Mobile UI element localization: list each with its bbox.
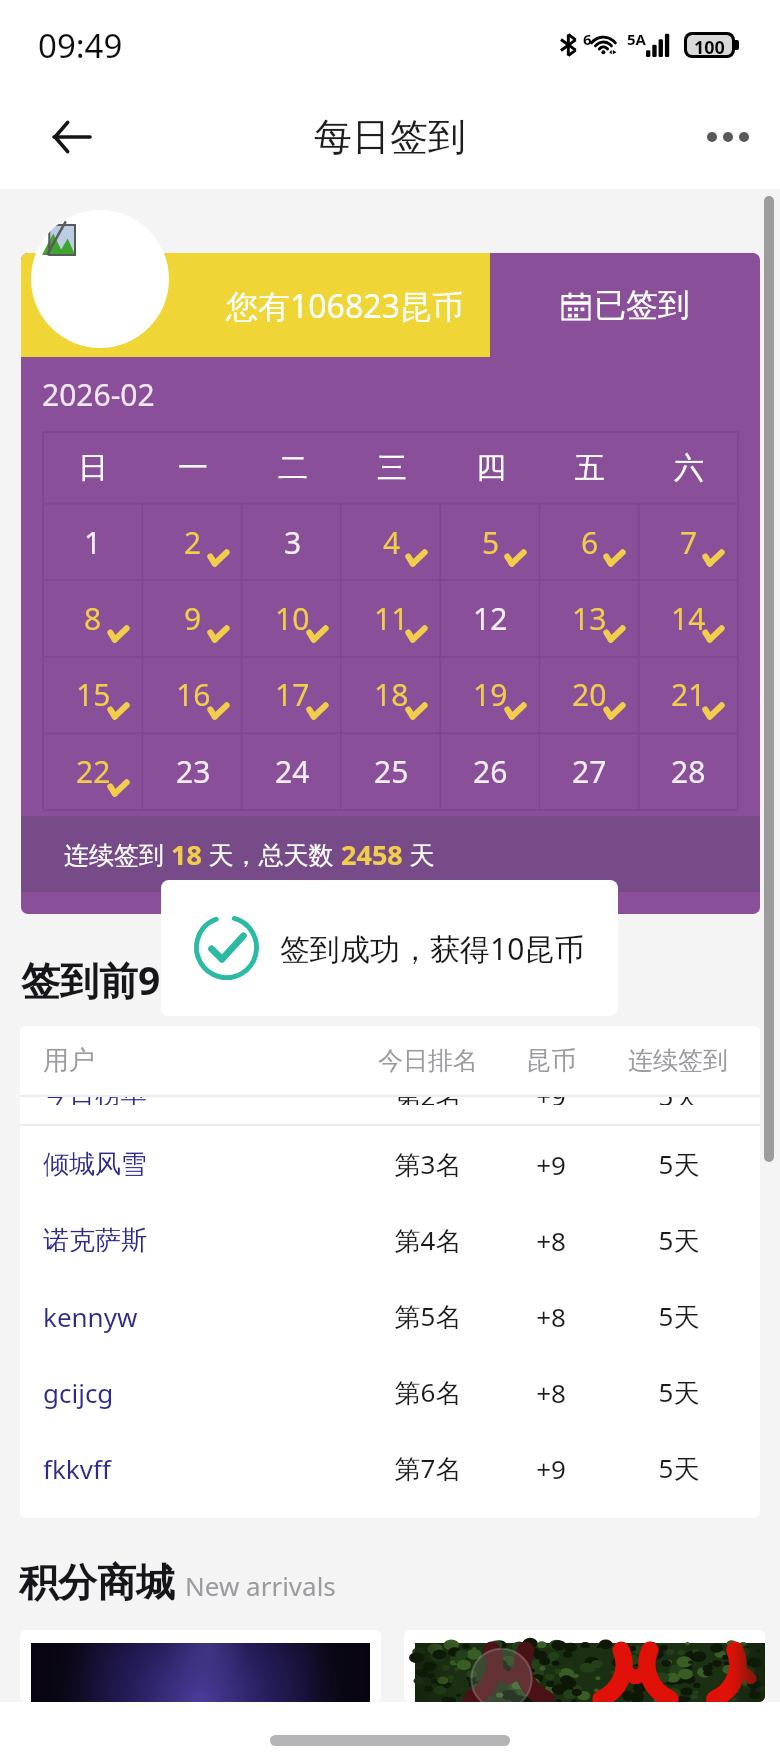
staticText: 14	[671, 598, 706, 639]
button[interactable]: kennyw	[20, 1278, 760, 1354]
staticText: 签到前99	[21, 953, 183, 1006]
staticText: 日	[78, 449, 108, 487]
staticText: 22	[76, 751, 111, 792]
button[interactable]: 8	[43, 580, 143, 656]
button[interactable]: Product 2	[404, 1630, 765, 1702]
staticText: +9	[471, 1451, 631, 1486]
staticText: 12	[473, 598, 508, 639]
button[interactable]: 9	[143, 580, 243, 656]
button[interactable]: 7	[639, 504, 738, 580]
button[interactable]: Avatar	[31, 210, 169, 348]
button[interactable]: 倾城风雪	[20, 1126, 760, 1202]
staticText: 18	[374, 674, 409, 715]
button[interactable]: 18	[342, 656, 441, 733]
button[interactable]: 17	[243, 656, 342, 733]
staticText: 5	[482, 522, 500, 563]
staticText: 5天	[599, 1222, 759, 1258]
staticText: 2026-02	[42, 374, 155, 415]
button[interactable]: 15	[43, 656, 143, 733]
staticText: 26	[473, 751, 508, 792]
button[interactable]: 24	[243, 733, 342, 810]
staticText: 8	[84, 598, 102, 639]
button[interactable]: 6	[540, 504, 639, 580]
staticText: 18	[171, 836, 202, 873]
staticText: 诺克萨斯	[43, 1224, 147, 1257]
button[interactable]: 21	[639, 656, 738, 733]
staticText: 今日排名	[348, 1045, 508, 1076]
staticText: 09:49	[38, 23, 123, 68]
staticText: New arrivals	[185, 1568, 336, 1603]
staticText: 6	[583, 29, 592, 49]
button[interactable]: 26	[441, 733, 540, 810]
button[interactable]: 10	[243, 580, 342, 656]
button[interactable]: 12	[441, 580, 540, 656]
button[interactable]: 1	[43, 504, 143, 580]
staticText: 三	[377, 449, 407, 487]
staticText: 17	[275, 674, 310, 715]
staticText: fkkvff	[43, 1451, 111, 1486]
button[interactable]: More options	[697, 107, 759, 167]
staticText: 15	[76, 674, 111, 715]
staticText: 五	[575, 449, 605, 487]
staticText: 16	[176, 674, 211, 715]
staticText: 第4名	[348, 1222, 508, 1258]
button[interactable]: 22	[43, 733, 143, 810]
button[interactable]: Back	[36, 101, 108, 173]
staticText: 9	[184, 598, 202, 639]
button[interactable]: 23	[143, 733, 243, 810]
staticText: +9	[471, 1147, 631, 1182]
staticText: 13	[572, 598, 607, 639]
staticText: 四	[476, 449, 506, 487]
staticText: 4	[383, 522, 401, 563]
staticText: +8	[471, 1223, 631, 1258]
staticText: kennyw	[43, 1299, 138, 1334]
button[interactable]: 5	[441, 504, 540, 580]
staticText: 6	[581, 522, 599, 563]
button[interactable]: 已签到	[490, 253, 760, 357]
button[interactable]: Product 1	[20, 1630, 381, 1702]
button[interactable]: 20	[540, 656, 639, 733]
staticText: 积分商城	[19, 1558, 175, 1607]
staticText: +9	[471, 1097, 631, 1105]
button[interactable]: 28	[639, 733, 738, 810]
staticText: 5天	[599, 1146, 759, 1182]
staticText: 倾城风雪	[43, 1148, 147, 1181]
staticText: 5天	[599, 1450, 759, 1486]
button[interactable]: 4	[342, 504, 441, 580]
button[interactable]: 19	[441, 656, 540, 733]
staticText: 100	[694, 35, 725, 55]
staticText: 5A	[627, 29, 646, 49]
staticText: 第3名	[348, 1146, 508, 1182]
staticText: 已签到	[594, 285, 690, 325]
staticText: 用户	[43, 1044, 95, 1077]
button[interactable]: 25	[342, 733, 441, 810]
staticText: 连续签到	[64, 837, 171, 871]
staticText: 7	[680, 522, 698, 563]
staticText: 5天	[599, 1374, 759, 1410]
staticText: 23	[176, 751, 211, 792]
button[interactable]: 27	[540, 733, 639, 810]
button[interactable]: 2	[143, 504, 243, 580]
staticText: 一	[178, 449, 208, 487]
button[interactable]: 13	[540, 580, 639, 656]
staticText: 27	[572, 751, 607, 792]
button[interactable]: 14	[639, 580, 738, 656]
staticText: 每日签到	[314, 113, 466, 161]
button[interactable]: 16	[143, 656, 243, 733]
staticText: 5天	[599, 1097, 759, 1105]
staticText: 昆币	[471, 1045, 631, 1076]
staticText: 24	[275, 751, 310, 792]
staticText: 2458	[341, 836, 403, 873]
staticText: 连续签到	[598, 1045, 758, 1076]
button[interactable]: 诺克萨斯	[20, 1202, 760, 1278]
button[interactable]: gcijcg	[20, 1354, 760, 1430]
staticText: 5天	[599, 1298, 759, 1334]
staticText: 天	[403, 837, 435, 871]
button[interactable]: 11	[342, 580, 441, 656]
staticText: 19	[473, 674, 508, 715]
button[interactable]: 3	[243, 504, 342, 580]
staticText: 第7名	[348, 1450, 508, 1486]
staticText: 20	[572, 674, 607, 715]
staticText: 二	[278, 449, 308, 487]
button[interactable]: fkkvff	[20, 1430, 760, 1506]
